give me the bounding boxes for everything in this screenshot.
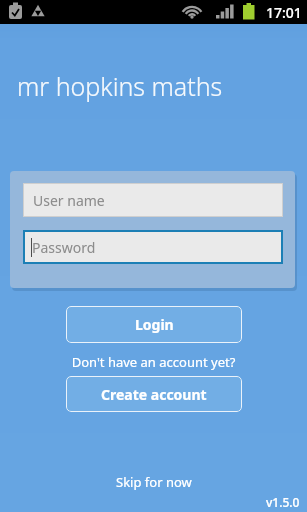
- staticText: Create account: [101, 385, 207, 404]
- staticText: mr hopkins maths: [17, 69, 223, 103]
- button[interactable]: Login: [66, 306, 242, 343]
- staticText: Don't have an account yet?: [0, 353, 307, 371]
- staticText: User name: [33, 191, 105, 210]
- button[interactable]: Password: [23, 230, 283, 264]
- staticText: Password: [32, 238, 96, 257]
- button[interactable]: User name: [23, 183, 283, 217]
- staticText: v1.5.0: [266, 494, 300, 510]
- button[interactable]: Create account: [66, 376, 242, 412]
- button[interactable]: Skip for now: [0, 472, 307, 492]
- staticText: Login: [135, 315, 174, 334]
- staticText: Skip for now: [116, 473, 192, 491]
- staticText: 17:01: [266, 3, 302, 22]
